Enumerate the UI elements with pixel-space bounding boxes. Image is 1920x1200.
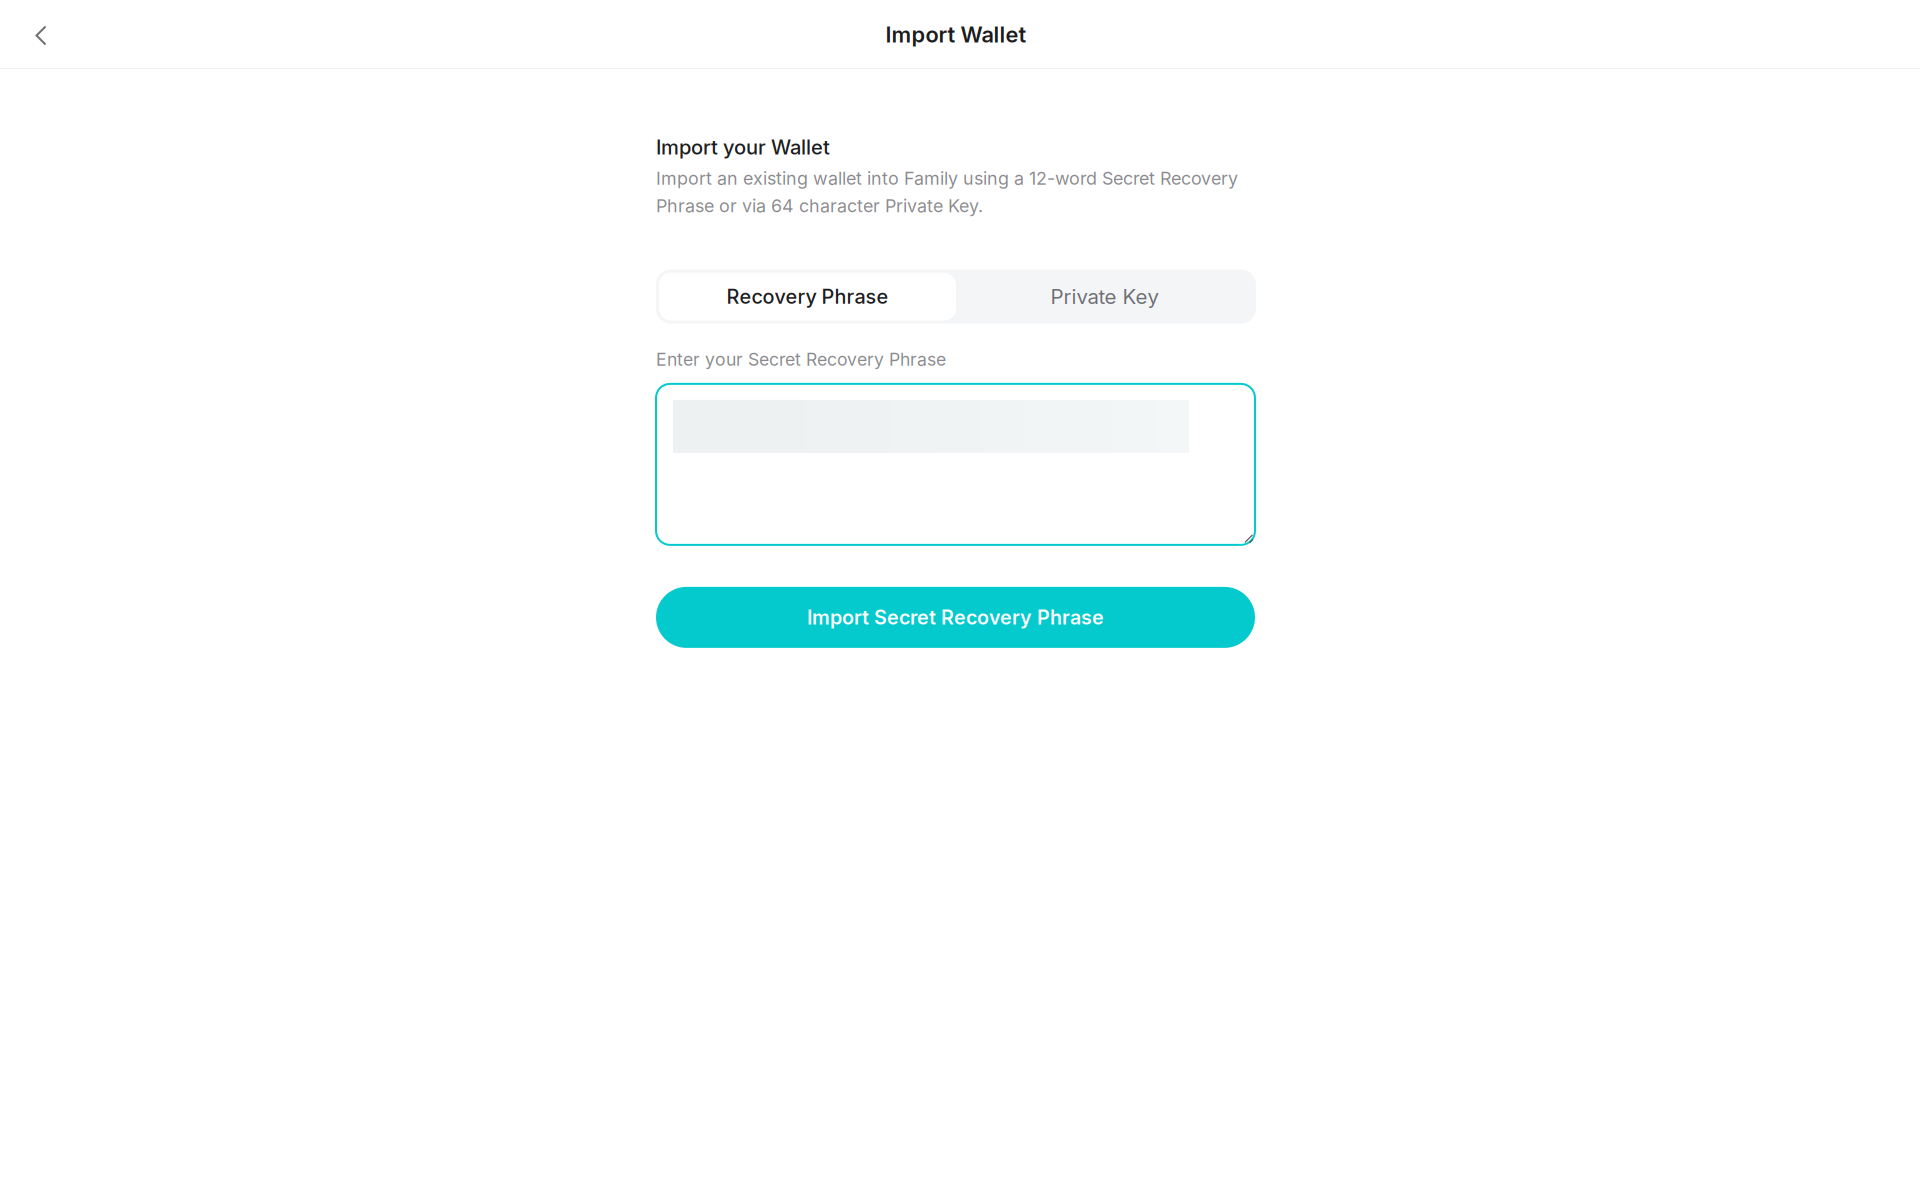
staticText: Import Secret Recovery Phrase	[807, 605, 1104, 629]
staticText: Import Wallet	[885, 21, 1026, 48]
button[interactable]: Import Secret Recovery Phrase	[656, 587, 1255, 648]
button[interactable]: Recovery Phrase	[659, 273, 956, 321]
staticText: Import your Wallet	[656, 135, 830, 159]
staticText: Recovery Phrase	[726, 285, 888, 309]
staticText: Import an existing wallet into Family us…	[656, 167, 1238, 217]
staticText: Private Key	[1050, 284, 1158, 309]
button[interactable]: Back	[24, 12, 58, 56]
staticText: Enter your Secret Recovery Phrase	[656, 349, 946, 370]
button[interactable]: Private Key	[956, 273, 1253, 321]
